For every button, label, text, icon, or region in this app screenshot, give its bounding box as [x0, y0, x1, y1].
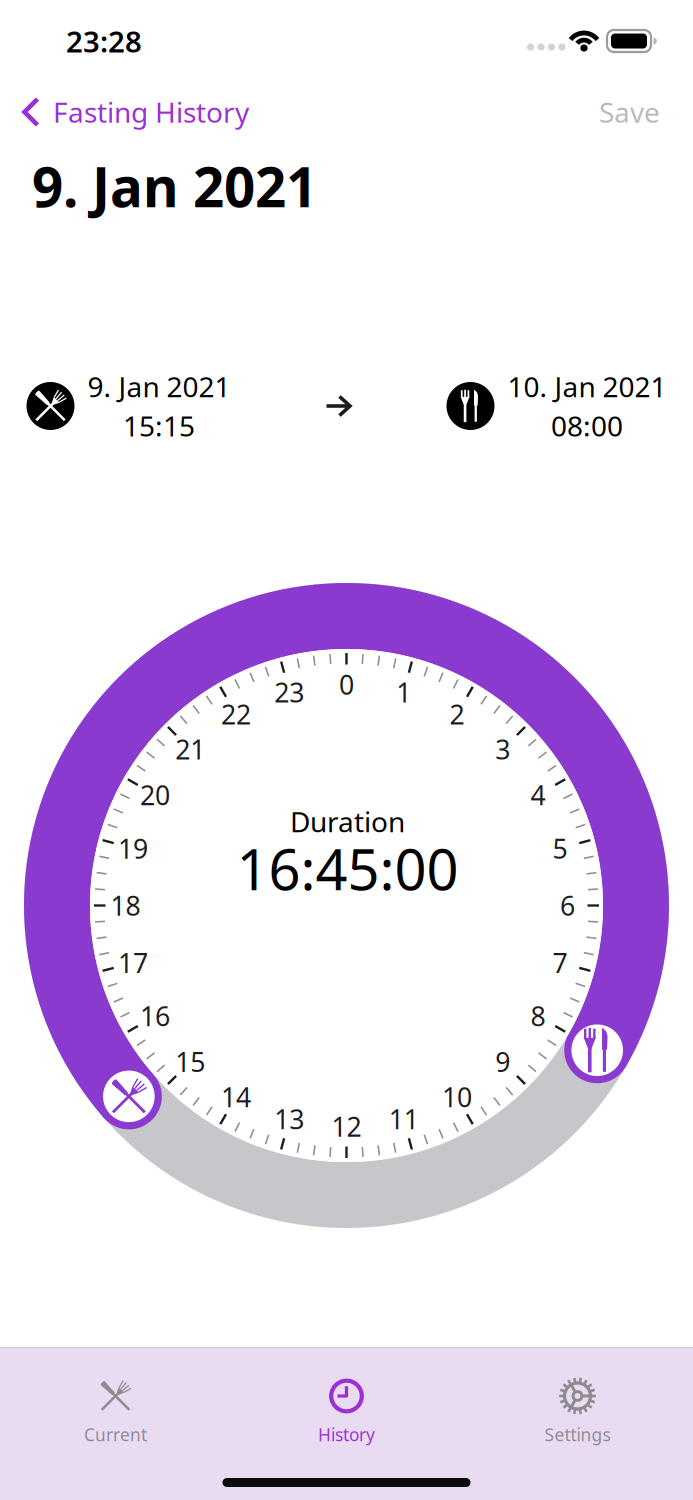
- button[interactable]: 10. Jan 2021: [446, 368, 666, 444]
- staticText: Save: [599, 93, 660, 131]
- staticText: 12: [331, 1109, 361, 1144]
- staticText: History: [318, 1423, 375, 1446]
- staticText: 9. Jan 2021: [87, 368, 230, 405]
- staticText: 1: [396, 674, 411, 710]
- staticText: 13: [274, 1101, 304, 1137]
- staticText: 9: [495, 1044, 510, 1079]
- button[interactable]: Save: [599, 93, 660, 131]
- staticText: Duration: [290, 803, 405, 840]
- button[interactable]: Current: [0, 1376, 231, 1446]
- button[interactable]: Fasting History: [21, 93, 249, 131]
- staticText: 15:15: [123, 407, 195, 444]
- staticText: 8: [530, 998, 545, 1034]
- staticText: 16:45:00: [236, 831, 458, 906]
- button[interactable]: Settings: [462, 1376, 693, 1446]
- staticText: 4: [530, 777, 545, 813]
- staticText: 0: [339, 667, 354, 702]
- staticText: 9. Jan 2021: [32, 150, 317, 222]
- staticText: 2: [449, 696, 464, 732]
- staticText: 14: [221, 1079, 251, 1115]
- staticText: 3: [495, 731, 510, 767]
- staticText: 23:28: [66, 21, 142, 60]
- staticText: 17: [118, 945, 148, 980]
- staticText: Current: [84, 1423, 147, 1446]
- staticText: 10. Jan 2021: [507, 368, 666, 405]
- staticText: 18: [110, 888, 140, 923]
- staticText: Fasting History: [53, 93, 249, 131]
- button[interactable]: 9. Jan 2021: [26, 368, 230, 444]
- staticText: 6: [560, 888, 575, 923]
- staticText: 7: [552, 945, 567, 980]
- button[interactable]: History: [231, 1376, 462, 1446]
- staticText: Settings: [544, 1423, 610, 1446]
- staticText: 15: [175, 1044, 205, 1079]
- staticText: 19: [118, 831, 148, 866]
- staticText: 10: [442, 1079, 472, 1115]
- staticText: 11: [389, 1101, 419, 1137]
- staticText: 5: [552, 831, 567, 866]
- staticText: 20: [140, 777, 170, 813]
- button[interactable]: Fast start time: [99, 1066, 159, 1126]
- staticText: 16: [140, 998, 170, 1034]
- button[interactable]: Fast end time: [567, 1020, 627, 1080]
- staticText: 08:00: [551, 407, 623, 444]
- staticText: 23: [274, 674, 304, 710]
- staticText: 22: [221, 696, 251, 732]
- staticText: 21: [175, 731, 205, 767]
